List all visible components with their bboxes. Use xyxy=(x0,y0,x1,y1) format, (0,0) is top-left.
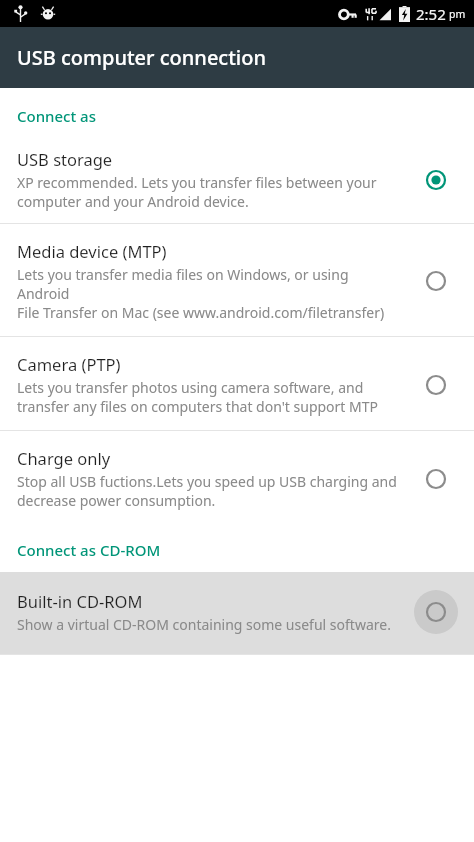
staticText: Lets you transfer photos using camera so… xyxy=(17,378,379,416)
staticText: Media device (MTP) xyxy=(17,240,167,262)
staticText: Stop all USB fuctions.Lets you speed up … xyxy=(17,472,397,510)
staticText: Charge only xyxy=(17,447,111,469)
staticText: USB storage xyxy=(17,148,113,170)
button[interactable]: Camera (PTP) xyxy=(0,337,474,430)
staticText: 2:52 xyxy=(416,4,446,24)
staticText: pm xyxy=(449,7,466,21)
button[interactable]: Charge only xyxy=(0,431,474,526)
button[interactable]: Media device (MTP) xyxy=(0,224,474,336)
staticText: Connect as CD-ROM xyxy=(17,540,161,560)
button[interactable]: USB storage xyxy=(0,140,474,223)
staticText: XP recommended. Lets you transfer files … xyxy=(17,173,377,211)
staticText: Camera (PTP) xyxy=(17,353,121,375)
button[interactable]: Built-in CD-ROM xyxy=(0,572,474,654)
staticText: Connect as xyxy=(17,106,96,126)
staticText: Built-in CD-ROM xyxy=(17,590,143,612)
staticText: Show a virtual CD-ROM containing some us… xyxy=(17,615,391,634)
staticText: USB computer connection xyxy=(17,44,266,71)
staticText: Lets you transfer media files on Windows… xyxy=(17,265,404,322)
